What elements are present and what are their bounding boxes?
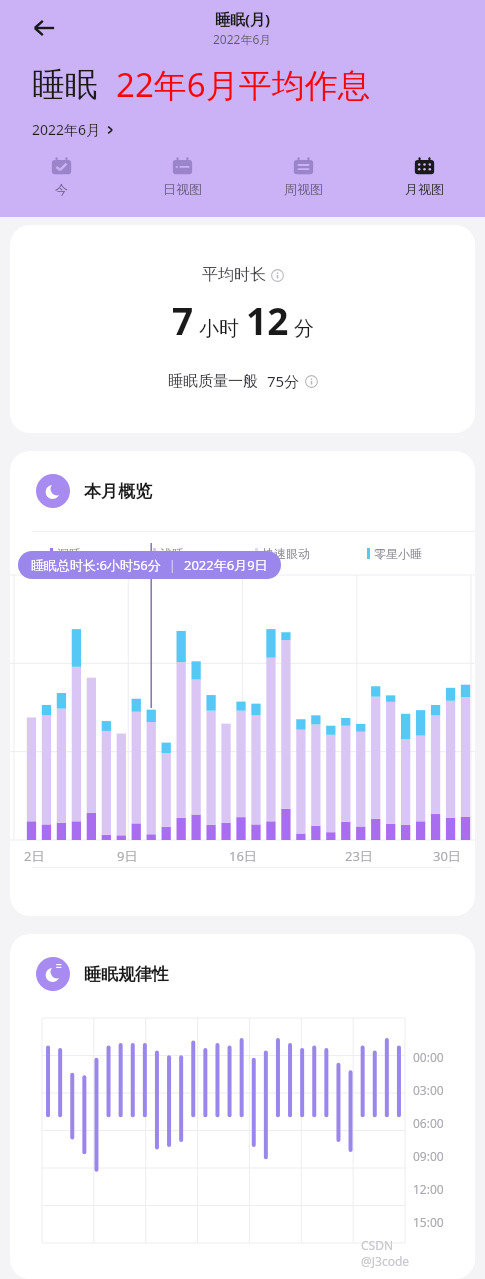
staticText: 小时 — [199, 316, 239, 341]
button[interactable]: 平均时长 — [10, 225, 475, 433]
staticText: 今 — [55, 181, 68, 197]
staticText: 平均时长 — [202, 265, 266, 285]
staticText: 2022年6月 — [32, 120, 101, 139]
staticText: 睡眠总时长:6小时56分 — [31, 556, 161, 574]
button[interactable]: 日视图 — [122, 152, 243, 199]
staticText: 16日 — [229, 847, 257, 865]
staticText: 12:00 — [413, 1181, 444, 1197]
staticText: 7 — [172, 295, 194, 345]
staticText: 03:00 — [413, 1082, 444, 1098]
staticText: 00:00 — [413, 1049, 444, 1065]
staticText: 分 — [294, 316, 314, 341]
button[interactable]: Back — [24, 8, 64, 48]
staticText: 9日 — [117, 847, 138, 865]
staticText: 月视图 — [405, 181, 444, 197]
staticText: 深睡 — [57, 546, 81, 561]
staticText: 日视图 — [163, 181, 202, 197]
staticText: 15:00 — [413, 1214, 444, 1230]
staticText: 09:00 — [413, 1148, 444, 1164]
staticText: 本月概览 — [84, 481, 152, 502]
button[interactable]: 周视图 — [243, 152, 364, 199]
staticText: 23日 — [345, 847, 373, 865]
staticText: CSDN @J3code — [361, 1237, 423, 1269]
staticText: 快速眼动 — [262, 546, 310, 561]
staticText: 睡眠质量一般 — [168, 372, 258, 391]
staticText: | — [169, 557, 176, 573]
staticText: 零星小睡 — [374, 546, 422, 561]
button[interactable]: 月视图 — [364, 152, 485, 199]
staticText: 12 — [246, 295, 289, 345]
staticText: 睡眠 — [32, 64, 98, 106]
staticText: 周视图 — [284, 181, 323, 197]
staticText: 睡眠规律性 — [84, 964, 169, 985]
button[interactable]: 2022年6月 — [32, 120, 116, 139]
button[interactable]: 本月概览 — [10, 451, 475, 531]
staticText: 浅睡 — [160, 546, 184, 561]
button[interactable]: 今 — [0, 152, 122, 199]
staticText: 06:00 — [413, 1115, 444, 1131]
staticText: 睡眠(月) — [215, 9, 271, 29]
button[interactable]: 睡眠规律性 — [10, 934, 475, 1014]
staticText: 2022年6月 — [213, 31, 272, 47]
staticText: 2022年6月9日 — [184, 556, 268, 574]
staticText: 22年6月平均作息 — [116, 62, 371, 107]
staticText: 2日 — [24, 847, 45, 865]
staticText: 30日 — [433, 847, 461, 865]
staticText: 75分 — [267, 371, 300, 391]
